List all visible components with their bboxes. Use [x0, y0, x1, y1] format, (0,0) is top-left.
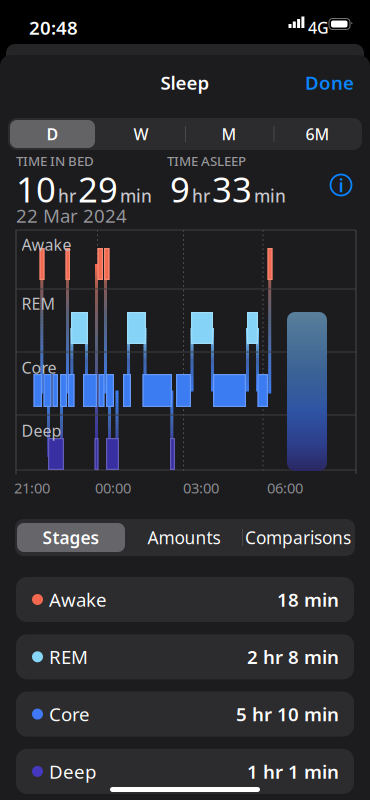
staticText: Deep [49, 759, 96, 784]
button[interactable]: Core [16, 692, 354, 737]
button[interactable]: REM [16, 634, 354, 679]
button[interactable]: 6M [273, 118, 361, 150]
staticText: REM [21, 293, 55, 314]
staticText: Done [305, 70, 354, 95]
staticText: 5 hr 10 min [236, 702, 339, 726]
button[interactable]: W [97, 118, 185, 150]
staticText: 20:48 [29, 15, 78, 40]
button[interactable]: Stages [16, 519, 126, 556]
staticText: M [221, 123, 236, 145]
staticText: 9 [170, 166, 190, 212]
staticText: TIME ASLEEP [167, 152, 246, 170]
staticText: 22 Mar 2024 [16, 203, 127, 228]
button[interactable]: Deep [16, 749, 354, 794]
staticText: Amounts [147, 526, 220, 549]
staticText: hr [58, 184, 76, 207]
button[interactable]: About Sleep [329, 173, 353, 197]
staticText: 33 [212, 166, 252, 212]
staticText: 29 [78, 166, 118, 212]
staticText: 10 [16, 166, 56, 212]
staticText: i [338, 173, 343, 197]
staticText: REM [49, 644, 88, 669]
staticText: 1 hr 1 min [247, 759, 339, 784]
staticText: 00:00 [95, 478, 131, 497]
button[interactable]: D [8, 118, 96, 150]
button[interactable]: Comparisons [242, 519, 354, 556]
button[interactable]: Done [305, 70, 354, 95]
staticText: 6M [305, 123, 329, 145]
staticText: Awake [49, 587, 107, 612]
staticText: 03:00 [183, 478, 219, 497]
staticText: hr [192, 184, 210, 207]
staticText: TIME IN BED [16, 152, 94, 170]
staticText: 18 min [277, 587, 339, 612]
staticText: Awake [21, 234, 71, 255]
staticText: Deep [21, 420, 61, 441]
staticText: W [133, 123, 148, 145]
staticText: 2 hr 8 min [247, 644, 339, 669]
staticText: Core [21, 357, 56, 378]
staticText: Stages [42, 526, 99, 549]
staticText: 21:00 [14, 478, 50, 497]
button[interactable]: M [185, 118, 273, 150]
staticText: 06:00 [267, 478, 303, 497]
staticText: 4G [308, 17, 329, 38]
button[interactable]: Awake [16, 577, 354, 622]
staticText: min [120, 184, 152, 207]
staticText: Sleep [160, 70, 209, 95]
staticText: min [254, 184, 286, 207]
button[interactable]: Amounts [128, 519, 240, 556]
staticText: D [46, 123, 58, 145]
staticText: Comparisons [245, 526, 351, 549]
staticText: Core [49, 702, 90, 726]
